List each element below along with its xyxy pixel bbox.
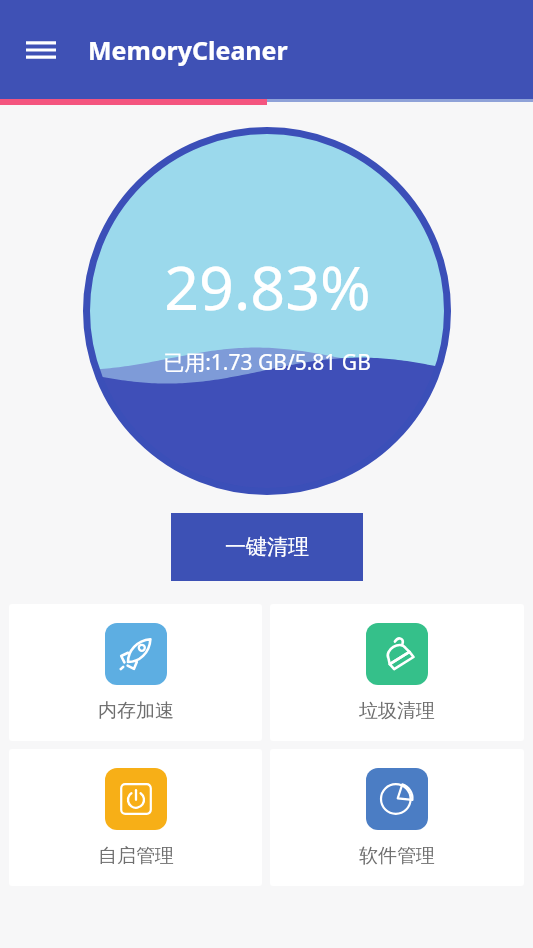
staticText: MemoryCleaner <box>88 33 288 67</box>
staticText: 自启管理 <box>98 844 174 868</box>
button[interactable]: 自启管理 <box>9 749 262 886</box>
staticText: 内存加速 <box>98 699 174 723</box>
staticText: 已用:1.73 GB/5.81 GB <box>163 348 371 377</box>
staticText: 垃圾清理 <box>359 699 435 723</box>
button[interactable]: 软件管理 <box>270 749 524 886</box>
button[interactable]: 一键清理 <box>171 513 363 581</box>
button[interactable]: Open navigation menu <box>14 23 68 77</box>
button[interactable]: 内存加速 <box>9 604 262 741</box>
staticText: 一键清理 <box>225 534 309 560</box>
staticText: 软件管理 <box>359 844 435 868</box>
staticText: 29.83% <box>164 245 371 328</box>
button[interactable]: 垃圾清理 <box>270 604 524 741</box>
